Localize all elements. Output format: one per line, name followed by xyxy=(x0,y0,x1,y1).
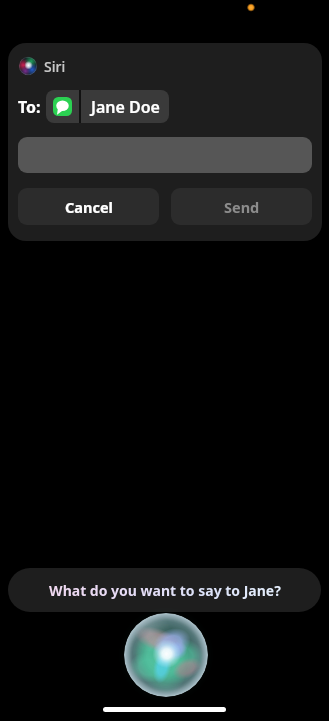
staticText: Send xyxy=(224,197,260,217)
staticText: Cancel xyxy=(65,197,113,217)
button[interactable]: What do you want to say to Jane? xyxy=(8,568,321,612)
button[interactable]: Send xyxy=(171,188,312,225)
button[interactable]: Message text field xyxy=(18,137,312,173)
button[interactable]: Jane Doe xyxy=(46,90,169,123)
button[interactable]: Cancel xyxy=(18,188,159,225)
staticText: To: xyxy=(18,96,41,118)
staticText: What do you want to say to Jane? xyxy=(49,581,281,600)
button[interactable]: Siri listening xyxy=(124,613,208,697)
staticText: Siri xyxy=(44,57,66,76)
staticText: Jane Doe xyxy=(91,96,160,118)
